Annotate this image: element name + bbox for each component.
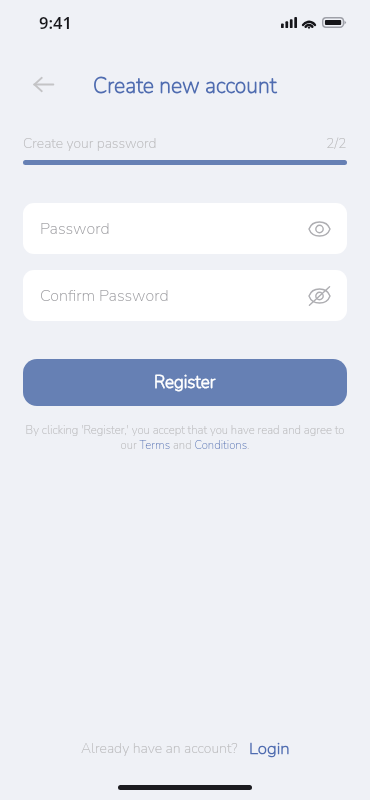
button[interactable]: Password: [23, 203, 347, 254]
staticText: Create your password: [23, 134, 157, 153]
staticText: Create new account: [93, 71, 277, 100]
button[interactable]: Back: [27, 68, 60, 101]
staticText: Login: [249, 737, 290, 760]
button[interactable]: Confirm Password: [23, 270, 347, 321]
staticText: By clicking 'Register,' you accept that …: [0, 422, 370, 454]
staticText: Confirm Password: [40, 285, 169, 307]
button[interactable]: Show password: [302, 212, 336, 246]
button[interactable]: Login: [249, 737, 290, 760]
button[interactable]: Hide password: [302, 279, 336, 313]
staticText: Already have an account?: [81, 739, 238, 758]
staticText: Password: [40, 218, 110, 240]
button[interactable]: Register: [23, 359, 347, 406]
staticText: Register: [154, 371, 216, 394]
staticText: 2/2: [326, 134, 347, 153]
staticText: 9:41: [39, 11, 72, 33]
